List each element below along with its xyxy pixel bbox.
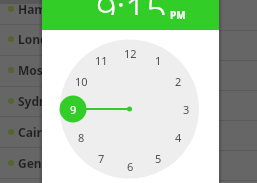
- staticText: 11: [95, 53, 108, 68]
- staticText: Sydney: [18, 93, 61, 109]
- button[interactable]: Hamburg: [18, 1, 75, 17]
- button[interactable]: 3: [175, 101, 197, 117]
- button[interactable]: 10: [70, 73, 92, 89]
- staticText: Geneva: [18, 155, 63, 171]
- button[interactable]: Cairo: [18, 124, 50, 140]
- button[interactable]: 8: [70, 129, 92, 145]
- button[interactable]: Geneva: [18, 155, 63, 171]
- staticText: 10: [75, 74, 88, 89]
- staticText: 1: [155, 53, 162, 68]
- staticText: 3: [183, 102, 190, 117]
- button[interactable]: 9:15: [42, 0, 219, 30]
- staticText: 4: [175, 130, 182, 145]
- staticText: 12: [124, 46, 137, 61]
- button[interactable]: 9: [62, 101, 84, 117]
- button[interactable]: 11: [90, 52, 112, 68]
- staticText: 6: [127, 159, 134, 174]
- staticText: Moscow: [18, 62, 67, 78]
- button[interactable]: Moscow: [18, 62, 67, 78]
- staticText: 9:15: [96, 0, 167, 15]
- staticText: 2: [175, 74, 182, 89]
- button[interactable]: 2: [167, 73, 189, 89]
- staticText: London: [18, 31, 63, 47]
- staticText: 8: [78, 130, 85, 145]
- button[interactable]: London: [18, 31, 63, 47]
- button[interactable]: 1: [147, 52, 169, 68]
- button[interactable]: 12: [119, 45, 141, 61]
- staticText: Hamburg: [18, 1, 75, 17]
- button[interactable]: 5: [147, 150, 169, 166]
- staticText: Cairo: [18, 124, 50, 140]
- button[interactable]: 6: [119, 158, 141, 174]
- button[interactable]: 4: [167, 129, 189, 145]
- staticText: 9: [70, 102, 77, 117]
- staticText: 5: [155, 151, 162, 166]
- staticText: 7: [98, 151, 105, 166]
- button[interactable]: 7: [90, 150, 112, 166]
- staticText: PM: [170, 8, 186, 22]
- button[interactable]: Sydney: [18, 93, 61, 109]
